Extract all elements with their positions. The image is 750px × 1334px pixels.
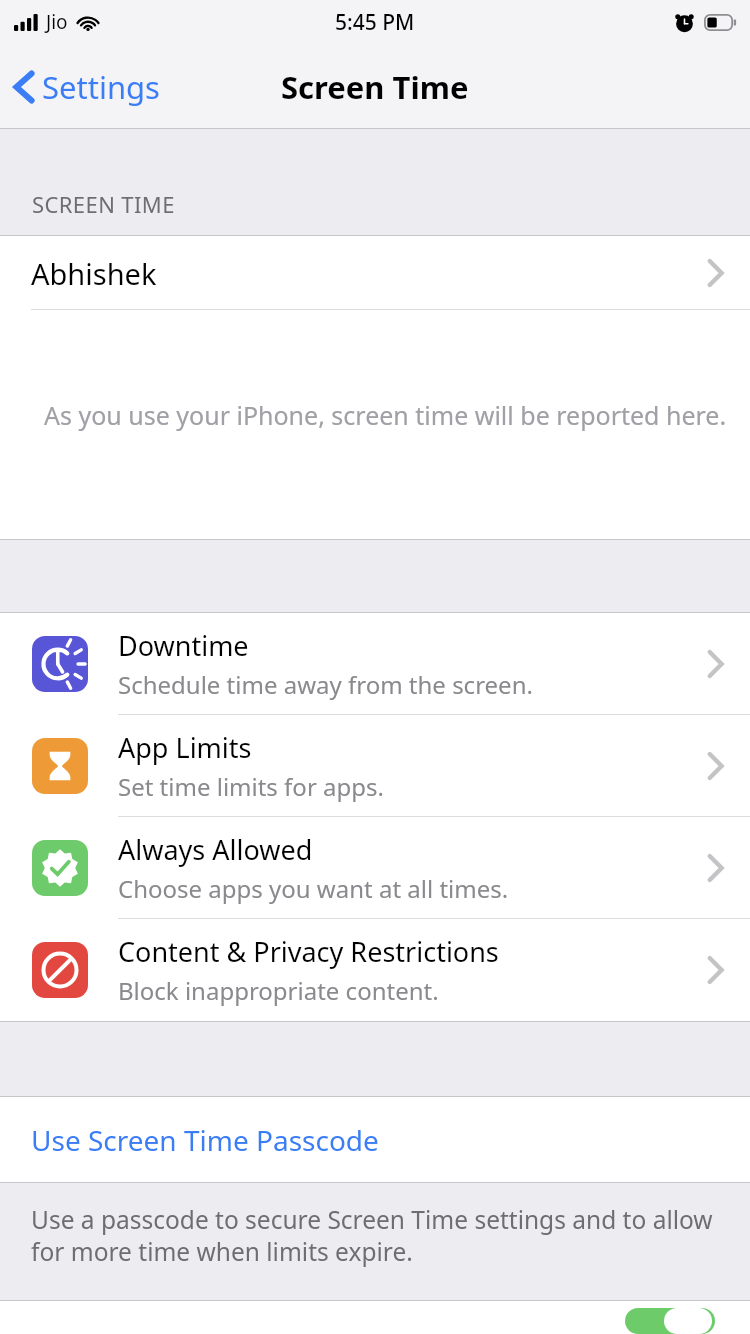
staticText: Use a passcode to secure Screen Time set… bbox=[31, 1203, 714, 1268]
staticText: Content & Privacy Restrictions bbox=[118, 933, 499, 970]
staticText: Screen Time bbox=[281, 66, 469, 108]
staticText: Abhishek bbox=[31, 254, 157, 293]
staticText: 5:45 PM bbox=[335, 8, 415, 37]
button[interactable]: Content & Privacy Restrictions bbox=[0, 919, 750, 1021]
button[interactable]: Always Allowed bbox=[0, 817, 750, 919]
staticText: Use Screen Time Passcode bbox=[31, 1121, 379, 1159]
button[interactable]: Abhishek bbox=[0, 236, 750, 310]
button[interactable]: Settings bbox=[0, 58, 174, 116]
button[interactable]: Downtime bbox=[0, 613, 750, 715]
staticText: Always Allowed bbox=[118, 831, 313, 868]
staticText: Schedule time away from the screen. bbox=[118, 668, 533, 701]
button[interactable]: App Limits bbox=[0, 715, 750, 817]
staticText: Settings bbox=[42, 66, 160, 108]
staticText: As you use your iPhone, screen time will… bbox=[44, 398, 727, 432]
staticText: App Limits bbox=[118, 729, 252, 766]
staticText: Downtime bbox=[118, 627, 249, 664]
staticText: Block inappropriate content. bbox=[118, 974, 439, 1007]
button[interactable]: Use Screen Time Passcode bbox=[0, 1097, 750, 1183]
staticText: SCREEN TIME bbox=[32, 189, 175, 219]
staticText: Choose apps you want at all times. bbox=[118, 872, 509, 905]
staticText: Jio bbox=[46, 9, 68, 35]
button[interactable]: Share Across Devices bbox=[0, 1301, 750, 1334]
button[interactable]: Share Across Devices toggle, on bbox=[625, 1308, 715, 1334]
staticText: Set time limits for apps. bbox=[118, 770, 384, 803]
